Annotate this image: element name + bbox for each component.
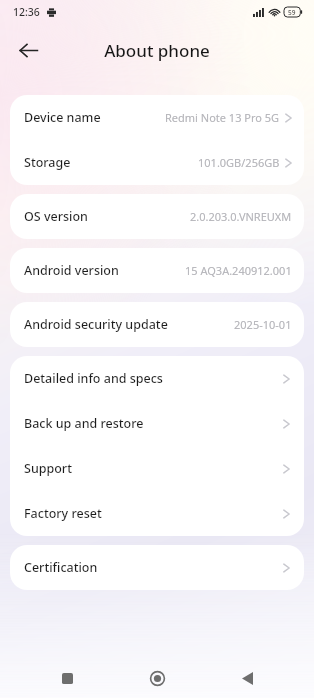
staticText: Detailed info and specs [24,370,163,387]
staticText: 59 [288,8,296,17]
button[interactable]: Factory reset [10,491,304,536]
staticText: 2.0.203.0.VNREUXM [190,209,292,224]
button[interactable]: Android security update [10,302,304,347]
button[interactable]: Back up and restore [10,401,304,446]
button[interactable]: Device name [10,95,304,140]
button[interactable]: Certification [10,545,304,590]
button[interactable]: Android version [10,248,304,293]
staticText: Certification [24,559,98,576]
staticText: Back up and restore [24,415,144,432]
button[interactable]: Detailed info and specs [10,356,304,401]
staticText: OS version [24,208,88,225]
staticText: 101.0GB/256GB [198,155,280,170]
button[interactable]: Support [10,446,304,491]
staticText: Factory reset [24,505,102,522]
staticText: 15 AQ3A.240912.001 [185,263,292,278]
button[interactable]: OS version [10,194,304,239]
staticText: Storage [24,154,71,171]
staticText: 2025-10-01 [234,317,292,332]
button[interactable]: Home [134,658,180,698]
button[interactable]: Back [8,30,48,70]
button[interactable]: Back [224,658,270,698]
staticText: Support [24,460,72,477]
staticText: Android security update [24,316,168,333]
button[interactable]: Storage [10,140,304,185]
button[interactable]: Recent apps [44,658,90,698]
staticText: About phone [104,39,210,62]
staticText: Redmi Note 13 Pro 5G [165,110,280,125]
staticText: 12:36 [13,5,40,19]
staticText: Device name [24,109,101,126]
staticText: Android version [24,262,119,279]
